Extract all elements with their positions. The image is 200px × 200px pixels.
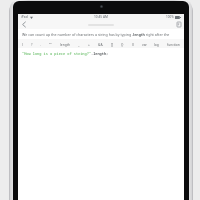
staticText: () <box>132 42 134 46</box>
staticText: We can count up the number of characters… <box>22 32 180 37</box>
staticText: 10:45 AM <box>94 15 109 19</box>
button[interactable]: ) <box>21 39 24 48</box>
button[interactable]: {} <box>120 39 125 48</box>
button[interactable]: ? <box>30 39 34 48</box>
staticText: "How long is a piece of string?".length; <box>22 51 109 56</box>
button[interactable]: "" <box>48 39 53 48</box>
button[interactable]: () <box>131 39 135 48</box>
staticText: . <box>40 42 41 46</box>
staticText: ) <box>22 42 23 46</box>
staticText: ? <box>31 42 33 46</box>
staticText: 100% <box>166 15 174 19</box>
button[interactable]: + <box>87 39 91 48</box>
staticText: && <box>98 42 103 46</box>
button[interactable]: var <box>141 39 148 48</box>
button[interactable]: [] <box>110 39 115 48</box>
button[interactable]: . <box>39 39 42 48</box>
button[interactable]: _ <box>77 39 81 48</box>
staticText: {} <box>121 42 124 46</box>
staticText: iPad <box>21 15 28 19</box>
staticText: function <box>167 42 180 46</box>
staticText: length <box>60 42 71 46</box>
button[interactable]: function <box>166 39 181 48</box>
button[interactable]: length <box>59 39 72 48</box>
button[interactable]: && <box>97 39 104 48</box>
staticText: log <box>154 42 159 46</box>
button[interactable]: log <box>153 39 160 48</box>
staticText: var <box>142 42 147 46</box>
staticText: "" <box>49 42 52 46</box>
staticText: + <box>88 42 90 46</box>
button[interactable]: Back <box>19 20 28 29</box>
staticText: [] <box>111 42 114 46</box>
button[interactable]: Bookmark <box>174 20 183 29</box>
